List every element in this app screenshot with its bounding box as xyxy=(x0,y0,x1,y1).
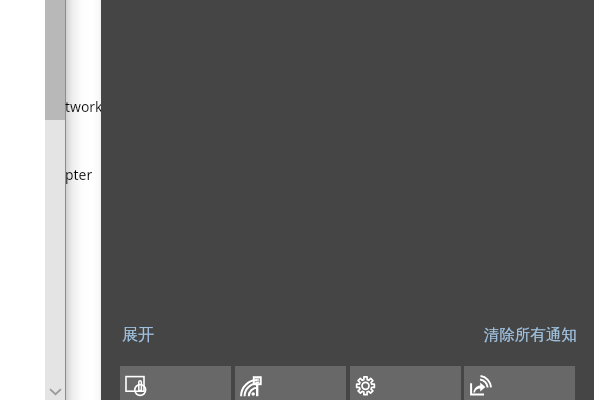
button[interactable]: 展开 xyxy=(122,325,154,345)
button[interactable]: Scroll down xyxy=(45,380,66,400)
button[interactable]: Network xyxy=(235,366,346,400)
button[interactable]: 清除所有通知 xyxy=(484,325,577,345)
staticText: twork xyxy=(65,96,120,117)
button[interactable]: Tablet mode xyxy=(120,366,231,400)
staticText: 展开 xyxy=(122,325,154,345)
button[interactable]: All settings xyxy=(350,366,461,400)
staticText: pter xyxy=(65,164,120,185)
staticText: 清除所有通知 xyxy=(484,325,577,345)
button[interactable]: Connect xyxy=(464,366,575,400)
